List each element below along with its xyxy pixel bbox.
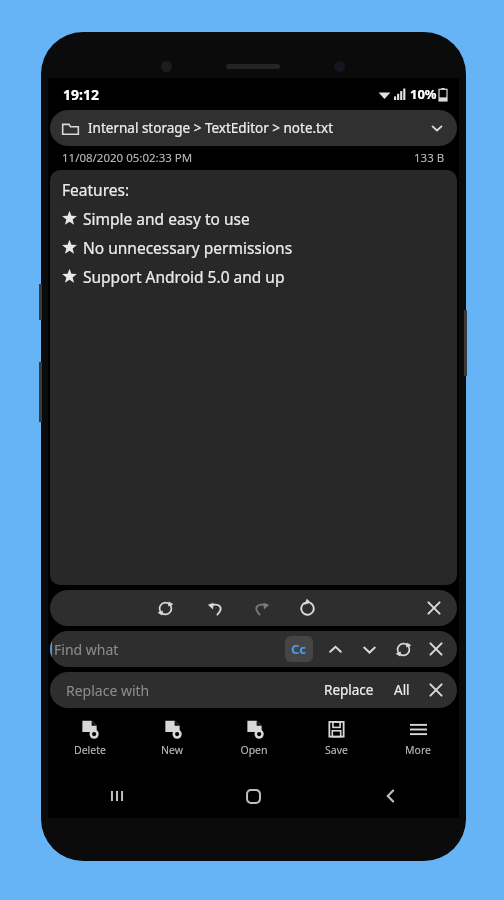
staticText: Delete xyxy=(74,743,106,757)
staticText: Replace xyxy=(324,681,374,699)
staticText: Simple and easy to use xyxy=(83,208,250,229)
staticText: Features: xyxy=(62,179,130,200)
button[interactable]: Delete xyxy=(48,712,131,764)
button[interactable]: Recent apps xyxy=(48,774,185,818)
button[interactable]: Internal storage > TextEditor > note.txt xyxy=(50,110,457,146)
button[interactable]: Features: xyxy=(50,170,457,585)
button[interactable]: Save xyxy=(295,712,377,764)
staticText: Open xyxy=(240,743,268,757)
button[interactable]: Close xyxy=(419,593,449,623)
button[interactable]: Back xyxy=(322,774,459,818)
staticText: 19:12 xyxy=(63,85,99,104)
button[interactable]: Replace xyxy=(319,676,379,704)
staticText: Support Android 5.0 and up xyxy=(83,266,285,287)
button[interactable]: More xyxy=(377,712,459,764)
button[interactable]: New xyxy=(131,712,213,764)
staticText: All xyxy=(394,681,410,699)
staticText: No unnecessary permissions xyxy=(83,237,293,258)
staticText: Find what xyxy=(54,640,119,659)
button[interactable]: Undo xyxy=(201,594,229,622)
button[interactable]: Cc xyxy=(285,636,313,662)
staticText: 133 B xyxy=(414,150,445,166)
button[interactable]: Find next xyxy=(355,635,383,663)
staticText: 10% xyxy=(410,85,437,103)
button[interactable]: Find previous xyxy=(321,635,349,663)
staticText: Internal storage > TextEditor > note.txt xyxy=(88,119,334,137)
button[interactable]: Close replace xyxy=(421,675,451,705)
staticText: More xyxy=(405,743,431,757)
staticText: Replace with xyxy=(66,681,150,700)
staticText: New xyxy=(161,743,183,757)
staticText: 11/08/2020 05:02:33 PM xyxy=(62,150,193,166)
button[interactable]: Replace mode xyxy=(389,635,417,663)
button[interactable]: Open xyxy=(213,712,295,764)
button[interactable]: Reload xyxy=(293,594,321,622)
button[interactable]: Close find xyxy=(421,634,451,664)
staticText: Save xyxy=(325,743,348,757)
button[interactable]: Redo xyxy=(247,594,275,622)
button[interactable]: Home xyxy=(185,774,322,818)
button[interactable]: Sync xyxy=(151,594,179,622)
button[interactable]: All xyxy=(389,676,415,704)
staticText: Cc xyxy=(291,640,307,658)
